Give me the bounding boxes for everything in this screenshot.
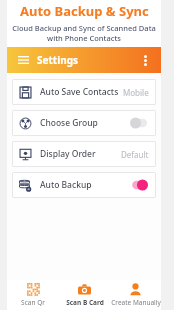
button[interactable]: More options	[137, 52, 153, 68]
staticText: Auto Save Contacts	[40, 86, 119, 98]
staticText: Create Manually	[111, 298, 161, 307]
staticText: with Phone Contacts	[47, 33, 121, 43]
staticText: Cloud Backup and Sync of Scanned Data	[12, 23, 156, 33]
button[interactable]: Scan B Card	[59, 280, 110, 310]
button[interactable]: Open navigation menu	[15, 52, 31, 68]
staticText: Scan B Card	[66, 298, 104, 307]
button[interactable]: Choose Group	[12, 110, 156, 136]
button[interactable]: Auto Save Contacts	[12, 79, 156, 105]
staticText: Display Order	[40, 148, 96, 160]
staticText: Choose Group	[40, 117, 98, 129]
button[interactable]: Display Order	[12, 141, 156, 167]
staticText: Scan Qr	[21, 298, 45, 307]
staticText: Mobile	[123, 87, 149, 98]
button[interactable]: Switch off	[129, 117, 149, 129]
staticText: Settings	[37, 53, 78, 67]
staticText: Auto Backup & Sync	[20, 2, 149, 20]
staticText: Auto Backup	[40, 179, 92, 191]
button[interactable]: Create Manually	[110, 280, 161, 310]
button[interactable]: Switch on	[129, 179, 149, 191]
button[interactable]: Auto Backup	[12, 172, 156, 198]
button[interactable]: Scan Qr	[7, 280, 59, 310]
staticText: Default	[121, 149, 149, 160]
